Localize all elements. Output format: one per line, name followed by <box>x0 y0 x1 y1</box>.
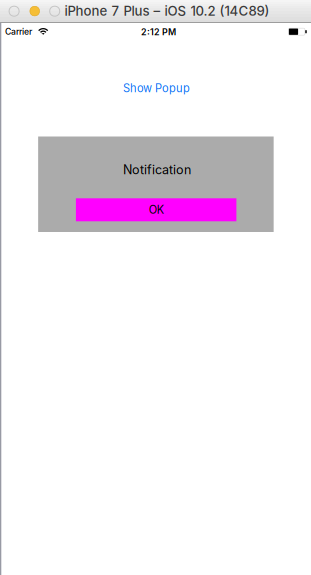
button[interactable]: Minimize window <box>30 6 39 16</box>
staticText: 2:12 PM <box>141 27 176 37</box>
button[interactable]: Show Popup <box>123 82 190 95</box>
staticText: OK <box>149 203 164 216</box>
button[interactable]: Close window <box>9 6 19 16</box>
staticText: Notification <box>123 162 191 177</box>
staticText: Show Popup <box>123 82 190 95</box>
button[interactable]: Zoom window <box>50 6 60 16</box>
button[interactable]: OK <box>76 198 236 221</box>
staticText: iPhone 7 Plus – iOS 10.2 (14C89) <box>64 3 269 19</box>
staticText: Carrier <box>5 26 32 37</box>
